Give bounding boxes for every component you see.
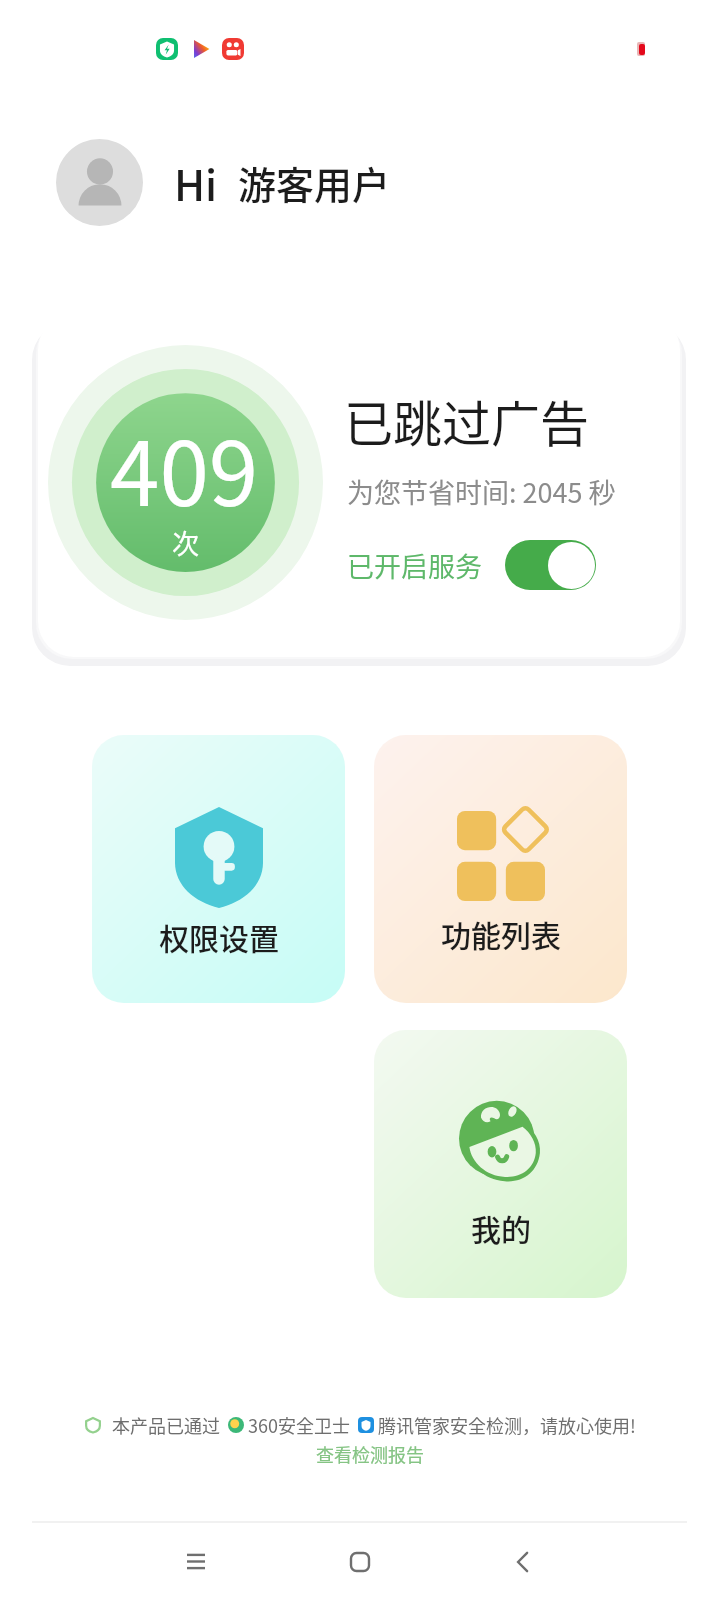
staticText: 权限设置	[159, 915, 279, 958]
button[interactable]: 功能列表	[374, 735, 627, 1003]
button[interactable]: Home	[316, 1523, 404, 1600]
staticText: 我的	[471, 1206, 531, 1249]
staticText: Hi	[174, 152, 218, 213]
button[interactable]: Back	[478, 1523, 566, 1600]
button[interactable]: 查看检测报告	[316, 1441, 424, 1467]
staticText: 已跳过广告	[344, 385, 590, 456]
staticText: 功能列表	[441, 912, 561, 955]
staticText: 游客用户	[238, 155, 391, 210]
staticText: 次	[172, 523, 199, 562]
staticText: 409	[110, 403, 259, 532]
staticText: 为您节省时间: 2045 秒	[347, 472, 616, 511]
button[interactable]: 权限设置	[92, 735, 345, 1003]
staticText: 腾讯管家安全检测，请放心使用!	[378, 1412, 636, 1438]
staticText: 查看检测报告	[316, 1441, 424, 1467]
staticText: 360安全卫士	[248, 1412, 350, 1438]
staticText: 本产品已通过	[112, 1412, 220, 1438]
button[interactable]: Recent apps	[152, 1523, 240, 1600]
button[interactable]: 我的	[374, 1030, 627, 1298]
button[interactable]: Toggle service	[505, 540, 596, 590]
staticText: 已开启服务	[347, 546, 482, 585]
